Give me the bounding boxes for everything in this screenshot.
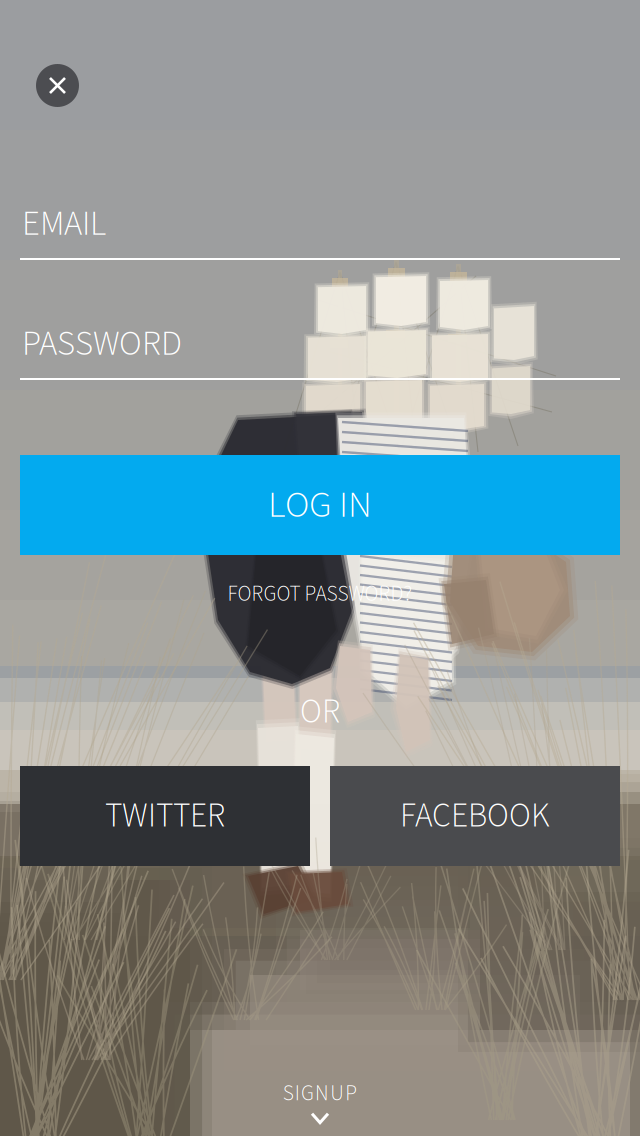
- staticText: PASSWORD: [22, 319, 182, 369]
- button[interactable]: SIGNUP: [220, 1074, 420, 1128]
- button[interactable]: LOG IN: [20, 455, 620, 555]
- button[interactable]: FACEBOOK: [330, 766, 620, 866]
- button[interactable]: TWITTER: [20, 766, 310, 866]
- button[interactable]: FORGOT PASSWORD?: [120, 577, 520, 611]
- staticText: FACEBOOK: [400, 792, 550, 840]
- staticText: FORGOT PASSWORD?: [227, 579, 412, 609]
- staticText: SIGNUP: [283, 1078, 357, 1109]
- staticText: LOG IN: [268, 478, 372, 532]
- staticText: TWITTER: [105, 792, 225, 840]
- button[interactable]: Close: [36, 64, 79, 107]
- staticText: OR: [300, 688, 340, 736]
- staticText: EMAIL: [22, 199, 106, 249]
